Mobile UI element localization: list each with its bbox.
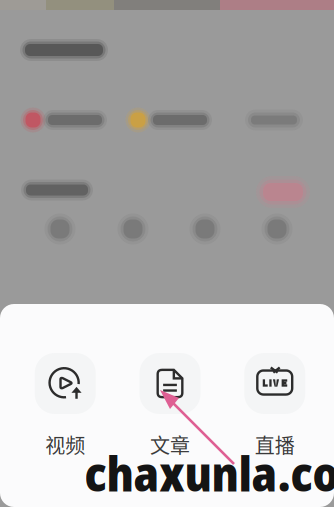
staticText: chaxunla.com xyxy=(84,440,334,506)
button[interactable]: 直播 xyxy=(225,353,325,459)
button[interactable]: 视频 xyxy=(15,353,115,459)
staticText: 直播 xyxy=(255,430,295,459)
button[interactable]: 文章 xyxy=(120,353,220,459)
staticText: 视频 xyxy=(45,430,85,459)
staticText: 文章 xyxy=(150,430,190,459)
